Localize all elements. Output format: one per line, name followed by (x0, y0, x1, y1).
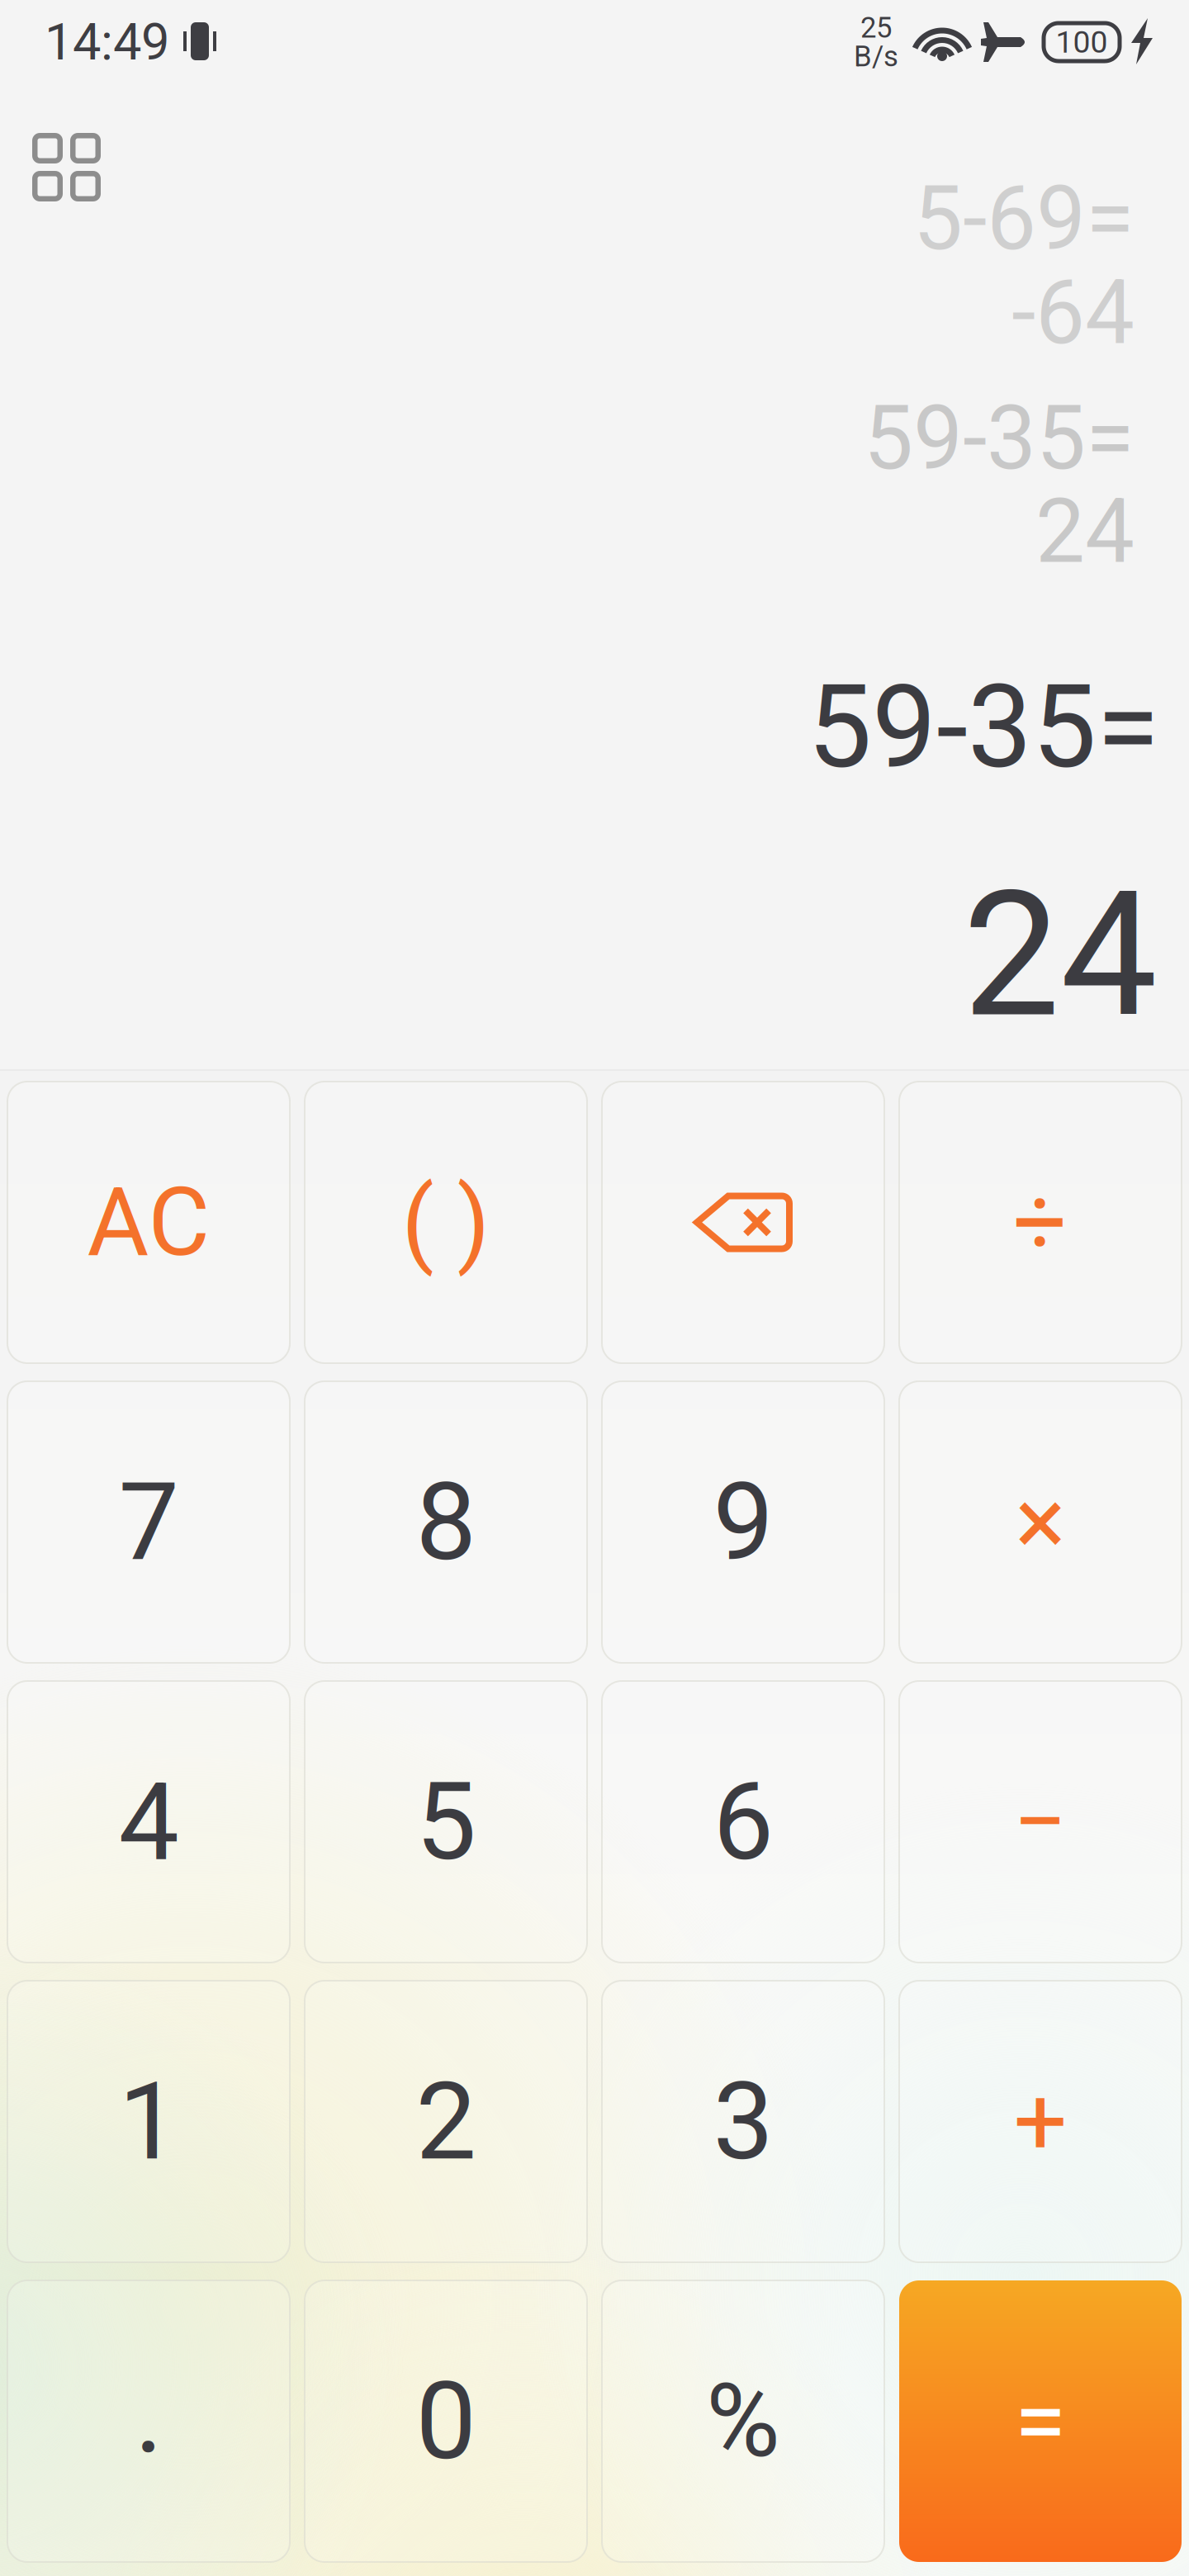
staticText: 2 (416, 2058, 476, 2185)
staticText: 25 (860, 11, 892, 45)
button[interactable]: History (0, 85, 134, 234)
button[interactable]: 5 (305, 1681, 587, 1963)
button[interactable]: × (899, 1381, 1182, 1663)
button[interactable]: 1 (7, 1981, 290, 2262)
button[interactable]: ( ) (305, 1082, 587, 1363)
staticText: 100 (1056, 24, 1108, 60)
button[interactable]: Delete (602, 1082, 884, 1363)
button[interactable]: 8 (305, 1381, 587, 1663)
staticText: 3 (713, 2058, 773, 2185)
staticText: -64 (1011, 261, 1135, 365)
staticText: 9 (713, 1459, 773, 1585)
button[interactable]: − (899, 1681, 1182, 1963)
staticText: 6 (713, 1759, 773, 1885)
button[interactable]: 2 (305, 1981, 587, 2262)
button[interactable]: AC (7, 1082, 290, 1363)
staticText: % (706, 2362, 780, 2481)
staticText: 5-69= (913, 167, 1135, 270)
button[interactable]: . (7, 2280, 290, 2562)
button[interactable]: 7 (7, 1381, 290, 1663)
staticText: 7 (118, 1459, 179, 1585)
button[interactable]: + (899, 1981, 1182, 2262)
staticText: 24 (1035, 480, 1135, 583)
staticText: = (1014, 2366, 1066, 2477)
button[interactable]: % (602, 2280, 884, 2562)
staticText: 24 (963, 854, 1158, 1056)
staticText: 4 (118, 1759, 179, 1885)
staticText: − (1013, 1766, 1068, 1877)
staticText: 14:49 (45, 12, 169, 72)
staticText: AC (87, 1167, 210, 1278)
staticText: 59-35= (808, 660, 1159, 794)
staticText: 5 (416, 1759, 476, 1885)
staticText: + (1014, 2066, 1067, 2177)
button[interactable]: Equals (899, 2280, 1182, 2562)
staticText: 0 (416, 2358, 476, 2484)
button[interactable]: 3 (602, 1981, 884, 2262)
staticText: ÷ (1013, 1167, 1068, 1278)
button[interactable]: ÷ (899, 1082, 1182, 1363)
button[interactable]: 6 (602, 1681, 884, 1963)
staticText: 59-35= (864, 387, 1135, 490)
staticText: 8 (416, 1459, 476, 1585)
button[interactable]: 9 (602, 1381, 884, 1663)
staticText: × (1015, 1467, 1066, 1578)
button[interactable]: 4 (7, 1681, 290, 1963)
button[interactable]: 0 (305, 2280, 587, 2562)
staticText: B/s (854, 40, 898, 73)
staticText: ( ) (402, 1167, 490, 1278)
staticText: 1 (118, 2058, 179, 2185)
staticText: . (135, 2351, 163, 2478)
